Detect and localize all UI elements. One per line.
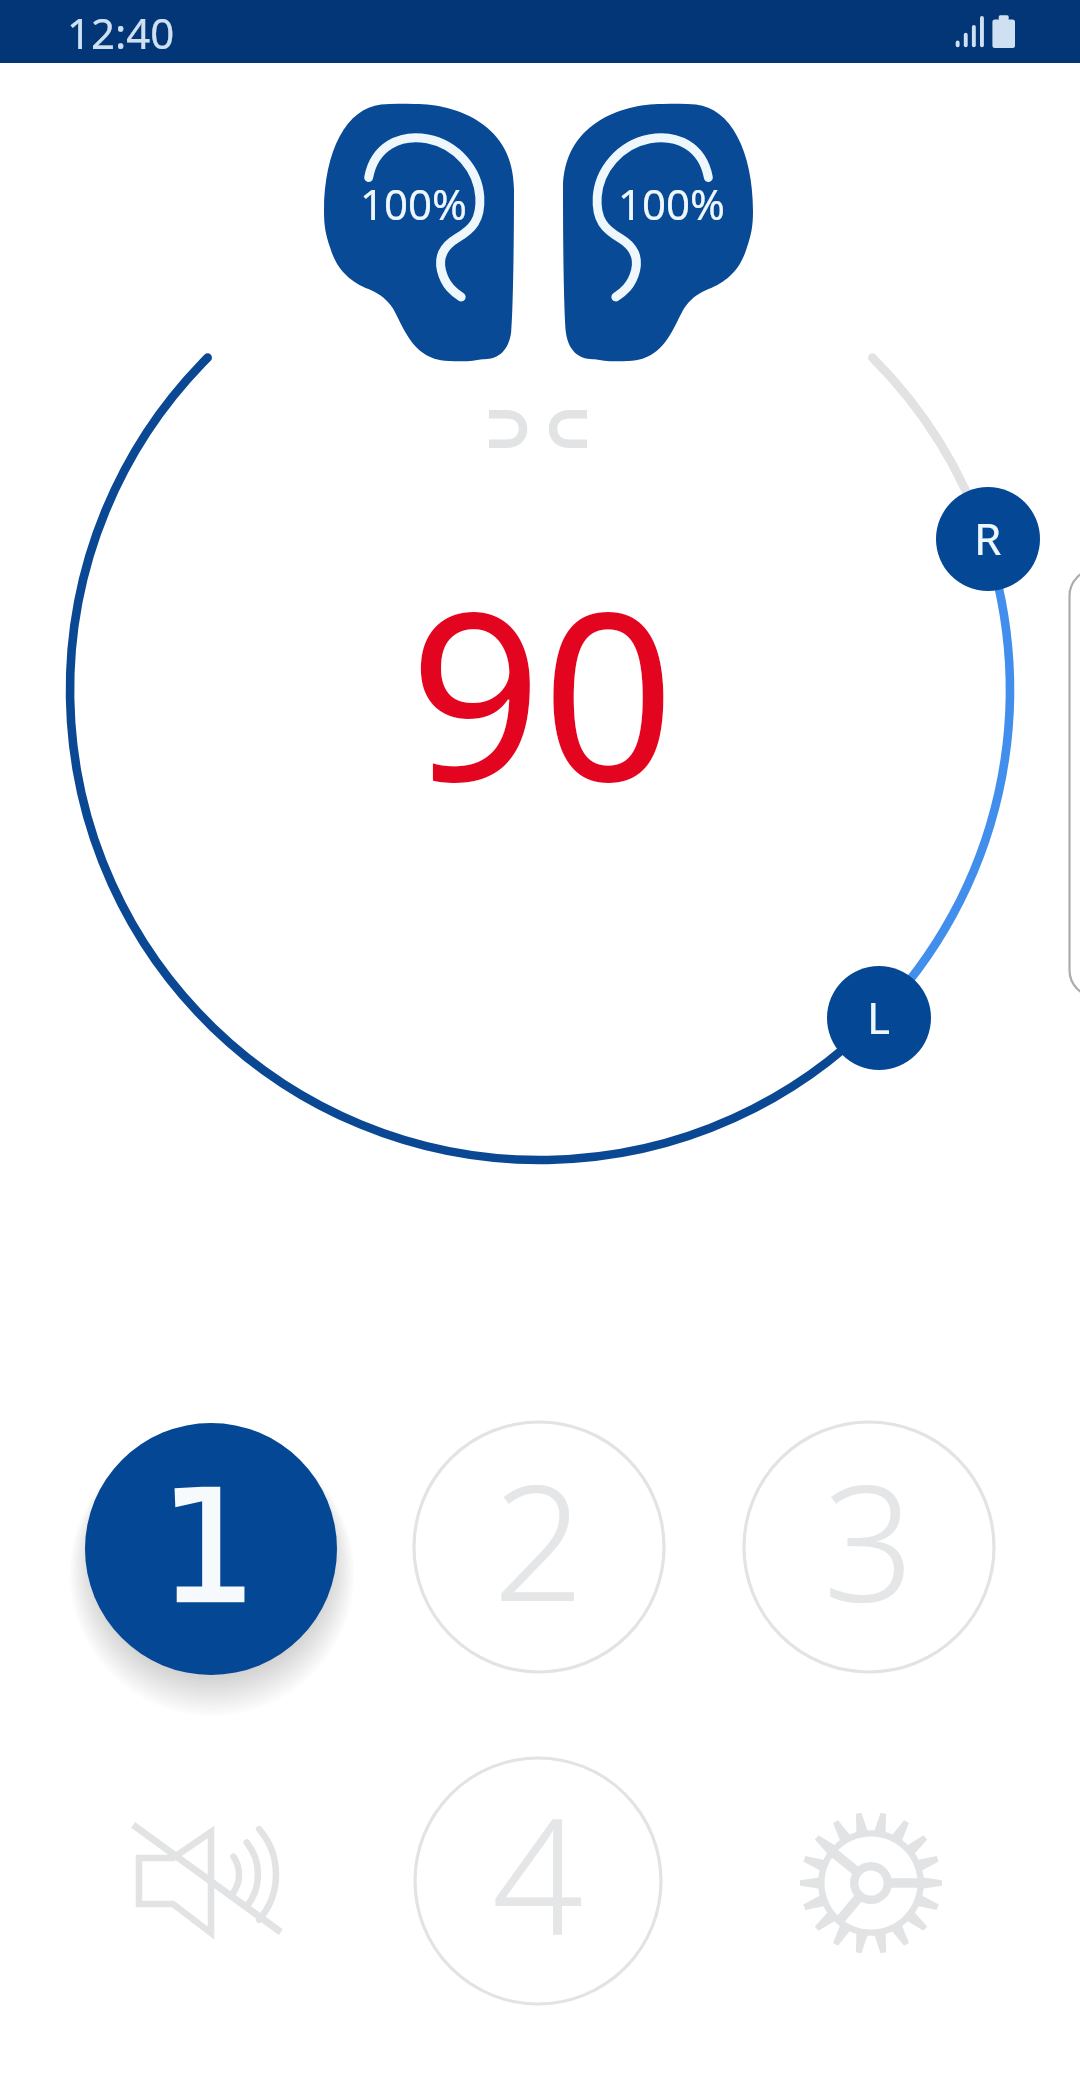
button[interactable]: Program 4 [393,1736,683,2026]
staticText: 3 [823,1430,915,1648]
staticText: 12:40 [67,4,175,61]
button[interactable]: R volume handle [936,487,1040,591]
staticText: 100% [618,175,725,232]
staticText: 90 [292,533,792,833]
button[interactable]: Right hearing aid battery 100 percent [563,104,753,362]
staticText: 100% [360,175,467,232]
staticText: 2 [493,1430,585,1648]
staticText: 4 [492,1764,584,1982]
staticText: R [974,508,1002,568]
button[interactable]: L volume handle [827,966,931,1070]
button[interactable]: Mute [135,1824,285,1939]
button[interactable]: Settings [799,1811,943,1955]
button[interactable]: Program 3 [722,1400,1016,1694]
button[interactable]: Connected [489,410,587,448]
button[interactable]: Program 1 [63,1401,359,1697]
button[interactable]: Left hearing aid battery 100 percent [324,104,514,362]
staticText: L [867,987,891,1047]
button[interactable]: Program 2 [392,1400,686,1694]
